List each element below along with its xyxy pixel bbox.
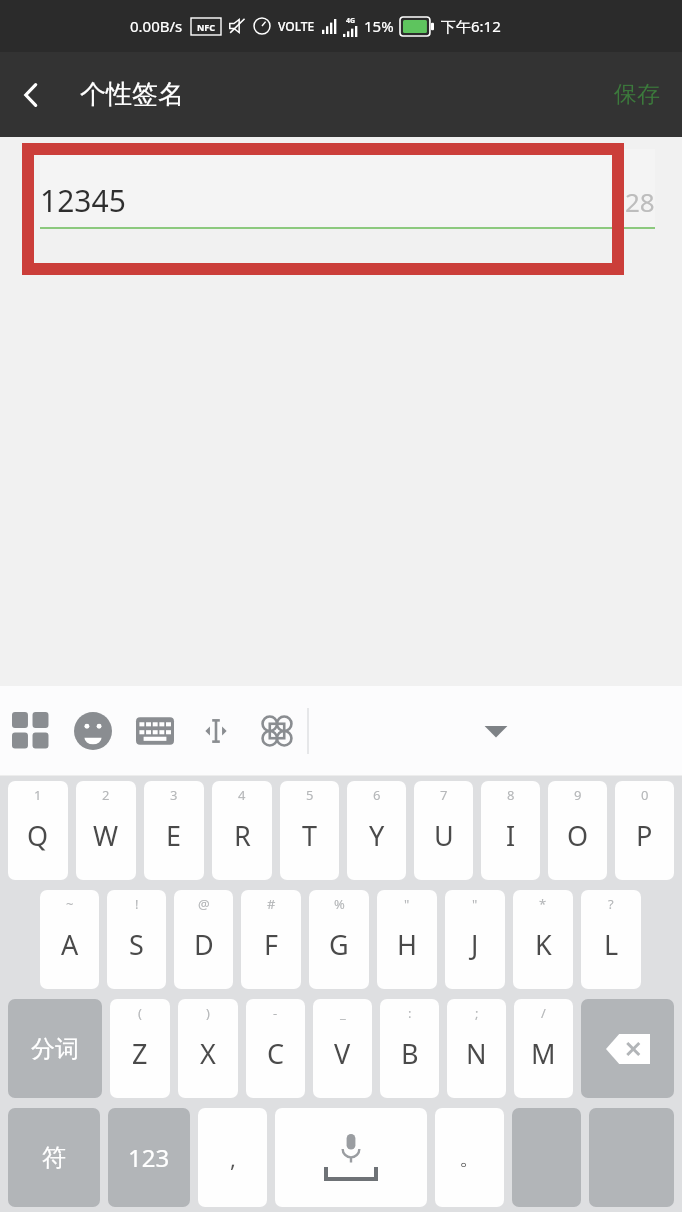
button[interactable]: ; bbox=[447, 999, 506, 1098]
button[interactable]: ? bbox=[581, 890, 641, 989]
staticText: % bbox=[334, 895, 345, 913]
staticText: L bbox=[604, 926, 619, 963]
button[interactable]: Key bbox=[512, 1108, 581, 1207]
staticText: " bbox=[404, 895, 410, 913]
staticText: F bbox=[264, 926, 279, 963]
staticText: 6 bbox=[373, 786, 381, 804]
button[interactable]: Keyboard layouts bbox=[0, 686, 62, 776]
staticText: Z bbox=[132, 1035, 148, 1072]
staticText: 3 bbox=[170, 786, 178, 804]
staticText: W bbox=[93, 817, 119, 854]
staticText: N bbox=[466, 1035, 487, 1072]
staticText: ~ bbox=[66, 895, 74, 913]
button[interactable]: 2 bbox=[76, 781, 136, 880]
staticText: 123 bbox=[128, 1141, 170, 1174]
button[interactable]: % bbox=[309, 890, 369, 989]
staticText: R bbox=[234, 817, 251, 854]
staticText: M bbox=[531, 1035, 556, 1072]
staticText: O bbox=[567, 817, 589, 854]
button[interactable]: Back bbox=[0, 64, 62, 126]
staticText: B bbox=[401, 1035, 419, 1072]
staticText: 5 bbox=[306, 786, 314, 804]
staticText: 15% bbox=[364, 16, 394, 36]
button[interactable]: 6 bbox=[347, 781, 406, 880]
button[interactable]: 分词 bbox=[8, 999, 102, 1098]
button[interactable]: Emoji bbox=[62, 686, 124, 776]
button[interactable]: ) bbox=[178, 999, 238, 1098]
staticText: G bbox=[329, 926, 349, 963]
staticText: A bbox=[61, 926, 79, 963]
button[interactable]: Hide keyboard bbox=[309, 686, 682, 776]
button[interactable]: 12345 bbox=[40, 149, 655, 227]
staticText: 2 bbox=[102, 786, 110, 804]
staticText: J bbox=[471, 926, 479, 963]
button[interactable]: 3 bbox=[144, 781, 204, 880]
staticText: Q bbox=[27, 817, 49, 854]
staticText: 7 bbox=[440, 786, 448, 804]
button[interactable]: - bbox=[246, 999, 305, 1098]
button[interactable]: " bbox=[445, 890, 505, 989]
staticText: ) bbox=[206, 1004, 210, 1022]
staticText: P bbox=[636, 817, 653, 854]
button[interactable]: ( bbox=[110, 999, 170, 1098]
button[interactable]: Keyboard settings bbox=[124, 686, 185, 776]
staticText: : bbox=[408, 1004, 412, 1022]
staticText: ( bbox=[138, 1004, 142, 1022]
staticText: 28 bbox=[625, 184, 655, 219]
button[interactable]: 符 bbox=[8, 1108, 100, 1207]
button[interactable]: 9 bbox=[548, 781, 607, 880]
staticText: 分词 bbox=[31, 1034, 79, 1064]
button[interactable]: 7 bbox=[414, 781, 473, 880]
staticText: 1 bbox=[34, 786, 42, 804]
button[interactable]: # bbox=[241, 890, 301, 989]
staticText: I bbox=[506, 817, 516, 854]
button[interactable]: : bbox=[380, 999, 439, 1098]
button[interactable]: Shortcuts bbox=[246, 686, 307, 776]
staticText: 符 bbox=[42, 1143, 66, 1173]
staticText: / bbox=[541, 1004, 546, 1022]
button[interactable]: 保存 bbox=[592, 66, 682, 123]
staticText: V bbox=[334, 1035, 351, 1072]
button[interactable]: ~ bbox=[40, 890, 99, 989]
button[interactable]: , bbox=[198, 1108, 267, 1207]
button[interactable]: 4 bbox=[212, 781, 272, 880]
button[interactable]: 1 bbox=[8, 781, 68, 880]
button[interactable]: @ bbox=[174, 890, 233, 989]
button[interactable]: 8 bbox=[481, 781, 540, 880]
staticText: 。 bbox=[459, 1144, 481, 1172]
staticText: VOLTE bbox=[278, 18, 315, 34]
button[interactable]: * bbox=[513, 890, 573, 989]
staticText: * bbox=[539, 895, 547, 913]
staticText: 0 bbox=[641, 786, 649, 804]
button[interactable]: Space / Voice input bbox=[275, 1108, 427, 1207]
button[interactable]: 。 bbox=[435, 1108, 504, 1207]
button[interactable]: _ bbox=[313, 999, 372, 1098]
button[interactable]: Move cursor bbox=[185, 686, 246, 776]
staticText: C bbox=[267, 1035, 285, 1072]
staticText: 个性签名 bbox=[80, 78, 184, 111]
staticText: ; bbox=[475, 1004, 479, 1022]
staticText: 下午6:12 bbox=[441, 16, 501, 36]
staticText: 保存 bbox=[614, 80, 660, 109]
staticText: ! bbox=[135, 895, 139, 913]
staticText: H bbox=[397, 926, 418, 963]
staticText: E bbox=[166, 817, 182, 854]
button[interactable]: 0 bbox=[615, 781, 674, 880]
staticText: 4 bbox=[238, 786, 246, 804]
staticText: D bbox=[194, 926, 214, 963]
staticText: T bbox=[302, 817, 318, 854]
staticText: @ bbox=[198, 895, 210, 913]
staticText: K bbox=[535, 926, 552, 963]
button[interactable]: 5 bbox=[280, 781, 339, 880]
staticText: 9 bbox=[574, 786, 582, 804]
staticText: Y bbox=[369, 817, 385, 854]
button[interactable]: Backspace bbox=[581, 999, 674, 1098]
button[interactable]: " bbox=[377, 890, 437, 989]
button[interactable]: ! bbox=[107, 890, 166, 989]
staticText: # bbox=[267, 895, 276, 913]
button[interactable]: 123 bbox=[108, 1108, 190, 1207]
button[interactable]: / bbox=[514, 999, 573, 1098]
staticText: X bbox=[200, 1035, 216, 1072]
staticText: _ bbox=[340, 1004, 346, 1022]
